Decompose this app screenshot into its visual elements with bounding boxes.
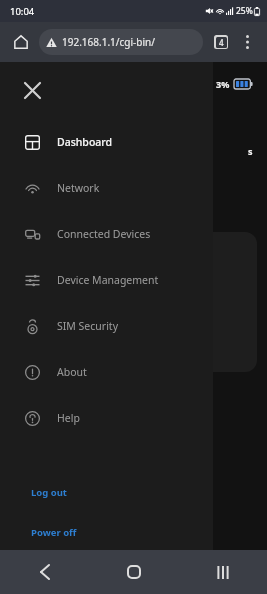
button[interactable]: About (0, 349, 213, 395)
staticText: Network (57, 181, 100, 195)
button[interactable]: Back (0, 550, 89, 594)
button[interactable]: Close menu (16, 74, 48, 106)
button[interactable]: SIM Security (0, 303, 213, 349)
button[interactable]: 192.168.1.1/cgi-bin/dashboard (39, 29, 203, 55)
button[interactable]: Connected Devices (0, 211, 213, 257)
button[interactable]: Dashboard (0, 119, 213, 165)
staticText: 10:04 (10, 5, 35, 18)
staticText: Help (57, 411, 80, 425)
button[interactable]: Device Management (0, 257, 213, 303)
staticText: About (57, 365, 87, 379)
button[interactable]: Tabs: 4 open (209, 30, 233, 54)
button[interactable]: Log out (0, 478, 213, 506)
staticText: Power off (31, 526, 77, 539)
staticText: 3% (216, 78, 230, 90)
staticText: Log out (31, 486, 67, 499)
button[interactable]: Home (89, 550, 178, 594)
button[interactable]: Network (0, 165, 213, 211)
staticText: 4 (219, 37, 224, 48)
button[interactable]: Power off (0, 518, 213, 546)
button[interactable]: Recent apps (178, 550, 267, 594)
button[interactable]: Home (8, 29, 34, 55)
staticText: 192.168.1.1/cgi-bin/dashboard (62, 35, 197, 49)
staticText: Connected Devices (57, 227, 151, 241)
staticText: s (248, 145, 253, 157)
staticText: 25% (236, 5, 253, 17)
staticText: SIM Security (57, 319, 118, 333)
button[interactable]: More options (235, 30, 259, 54)
button[interactable]: Help (0, 395, 213, 441)
staticText: Device Management (57, 273, 159, 287)
staticText: Dashboard (57, 135, 113, 149)
